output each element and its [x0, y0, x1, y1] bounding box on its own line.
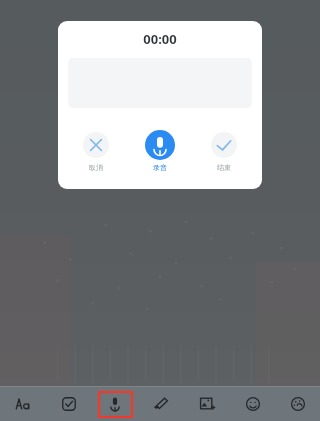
button[interactable]: Finish — [202, 129, 246, 173]
button[interactable]: Draw — [138, 387, 184, 421]
button[interactable]: Emoji — [230, 387, 276, 421]
button[interactable]: Text style — [0, 387, 46, 421]
staticText: 取消 — [89, 163, 103, 172]
staticText: 录音 — [153, 163, 167, 172]
button[interactable]: Image — [184, 387, 230, 421]
button[interactable]: Cancel — [74, 129, 118, 173]
staticText: 00:00 — [143, 30, 177, 48]
button[interactable]: Checklist — [46, 387, 92, 421]
staticText: 结束 — [217, 163, 231, 172]
button[interactable]: Record — [138, 129, 182, 173]
button[interactable]: Voice — [92, 387, 138, 421]
button[interactable]: Theme — [276, 387, 320, 421]
